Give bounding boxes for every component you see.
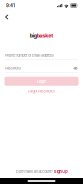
- staticText: 9:41: [6, 3, 15, 8]
- button[interactable]: Forgot Password?: [28, 89, 55, 93]
- staticText: big: [30, 32, 37, 39]
- staticText: Forgot Password?: [28, 89, 55, 93]
- button[interactable]: Show password: [73, 66, 78, 70]
- staticText: basket: [37, 32, 53, 39]
- staticText: Password: [5, 66, 20, 71]
- button[interactable]: Back: [0, 11, 13, 23]
- button[interactable]: Login: [4, 77, 78, 86]
- staticText: Login: [37, 79, 46, 84]
- staticText: Don't have an account?: [16, 169, 53, 174]
- staticText: Sign Up: [54, 169, 67, 174]
- button[interactable]: Sign Up: [54, 169, 67, 174]
- staticText: Phone number or Email address: [5, 53, 54, 58]
